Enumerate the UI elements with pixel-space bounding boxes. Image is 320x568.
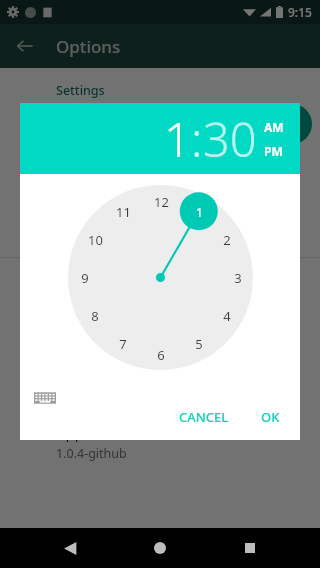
staticText: 1.0.4-github: [56, 445, 127, 462]
button[interactable]: 1: [164, 107, 191, 171]
button[interactable]: Navigate up: [6, 27, 44, 65]
staticText: PM: [264, 143, 283, 159]
button[interactable]: [20, 109, 300, 229]
button[interactable]: OK: [251, 400, 290, 434]
button[interactable]: Home: [140, 528, 180, 568]
button[interactable]: 6: [148, 342, 174, 368]
staticText: :: [191, 107, 203, 171]
button[interactable]: AM: [264, 119, 284, 135]
staticText: Options: [56, 35, 121, 58]
button[interactable]: Back: [50, 528, 90, 568]
button[interactable]: Add: [272, 104, 312, 144]
staticText: OK: [261, 408, 280, 426]
staticText: 10: [88, 231, 103, 249]
button[interactable]: 7: [110, 331, 136, 357]
button[interactable]: 2: [214, 227, 240, 253]
staticText: 30: [203, 107, 257, 171]
staticText: 4: [223, 307, 231, 325]
staticText: 6: [157, 346, 165, 364]
button[interactable]: 30: [203, 107, 257, 171]
button[interactable]: Recent apps: [230, 528, 270, 568]
staticText: 8: [91, 307, 99, 325]
staticText: 12: [154, 193, 169, 211]
button[interactable]: 3: [225, 265, 251, 291]
button[interactable]: 4: [214, 303, 240, 329]
button[interactable]: 9: [72, 265, 98, 291]
button[interactable]: 1: [186, 199, 212, 225]
staticText: 7: [119, 335, 127, 353]
staticText: 1: [196, 204, 203, 220]
button[interactable]: 10: [82, 227, 108, 253]
button[interactable]: Switch to text input mode: [30, 383, 60, 413]
staticText: 1: [164, 107, 191, 171]
staticText: 2: [223, 231, 231, 249]
staticText: Settings: [56, 82, 105, 99]
staticText: CANCEL: [179, 408, 229, 426]
button[interactable]: App version: [0, 418, 320, 472]
staticText: App version: [56, 422, 140, 442]
button[interactable]: 8: [82, 303, 108, 329]
staticText: 3: [234, 269, 242, 287]
button[interactable]: 5: [186, 331, 212, 357]
staticText: 5: [195, 335, 203, 353]
staticText: AM: [264, 119, 284, 135]
button[interactable]: PM: [264, 143, 283, 159]
button[interactable]: CANCEL: [169, 400, 239, 434]
staticText: 9:15: [288, 4, 312, 20]
button[interactable]: 11: [110, 199, 136, 225]
staticText: 9: [81, 269, 89, 287]
staticText: 11: [116, 203, 131, 221]
button[interactable]: 12: [148, 189, 174, 215]
